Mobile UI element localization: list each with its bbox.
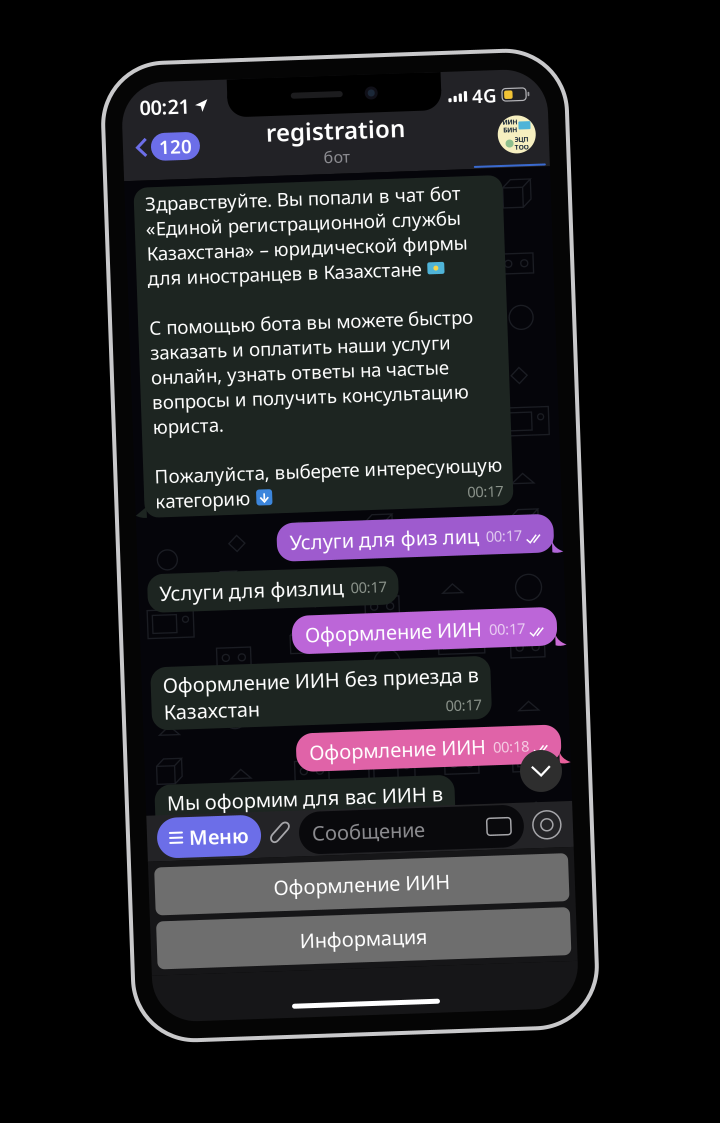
- button[interactable]: Scroll to bottom: [512, 756, 554, 798]
- button[interactable]: Keyboard: [477, 823, 501, 840]
- staticText: 00:17: [486, 624, 522, 644]
- staticText: «Единой регистрационной службы: [157, 209, 472, 234]
- staticText: Мы оформим для вас ИИН в: [158, 783, 434, 810]
- staticText: 00:17: [349, 578, 385, 597]
- button[interactable]: Attach file: [258, 818, 282, 844]
- button[interactable]: Chat profile: [512, 121, 550, 159]
- staticText: 00:18: [486, 742, 522, 762]
- staticText: registration: [280, 114, 419, 146]
- staticText: ИИН: [517, 123, 532, 132]
- staticText: С помощью бота вы можете быстро: [157, 308, 481, 333]
- button[interactable]: Оформление ИИН: [143, 860, 557, 908]
- staticText: Меню: [179, 818, 239, 845]
- staticText: [157, 284, 162, 308]
- staticText: Пожалуйста, выберете интересующую: [157, 457, 505, 482]
- button[interactable]: Информация: [143, 914, 557, 962]
- staticText: Оформление ИИН без приезда в: [158, 665, 474, 692]
- staticText: Казахстане: [158, 810, 265, 836]
- staticText: Оформление ИИН: [261, 871, 438, 898]
- staticText: для иностранцев в Казахстане: [157, 259, 431, 284]
- staticText: 120: [173, 128, 206, 153]
- staticText: 4G: [488, 88, 513, 113]
- staticText: Сообщение: [302, 818, 415, 845]
- staticText: ТОО: [528, 149, 542, 158]
- staticText: 00:17: [440, 699, 476, 719]
- staticText: Казахстана» – юридической фирмы: [157, 234, 478, 259]
- staticText: бот: [337, 146, 363, 167]
- staticText: БИН: [517, 131, 531, 140]
- staticText: заказать и оплатить наши услуги: [157, 333, 458, 358]
- staticText: ЭЦП: [528, 141, 542, 150]
- button[interactable]: Record voice message: [521, 815, 553, 847]
- staticText: Здравствуйте. Вы попали в чат бот: [157, 184, 473, 209]
- staticText: Услуги для физ лиц: [290, 527, 479, 553]
- staticText: 00:17: [469, 486, 505, 506]
- staticText: категорию: [157, 482, 252, 507]
- staticText: вопросы и получить консультацию: [157, 383, 474, 408]
- staticText: Услуги для физлиц: [158, 573, 342, 600]
- staticText: 00:21: [155, 87, 205, 114]
- staticText: Казахстан: [158, 692, 254, 719]
- staticText: Оформление ИИН: [302, 738, 479, 764]
- button[interactable]: Меню: [147, 811, 251, 852]
- staticText: онлайн, узнать ответы на частые: [157, 358, 455, 383]
- button[interactable]: 120: [150, 127, 214, 154]
- staticText: 00:17: [486, 531, 522, 551]
- staticText: [157, 432, 162, 457]
- staticText: юриста.: [157, 408, 228, 432]
- staticText: Оформление ИИН: [302, 620, 479, 646]
- staticText: Информация: [286, 925, 414, 952]
